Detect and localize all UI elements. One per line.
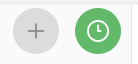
button[interactable]: History <box>75 8 121 54</box>
button[interactable]: Add <box>13 8 59 54</box>
